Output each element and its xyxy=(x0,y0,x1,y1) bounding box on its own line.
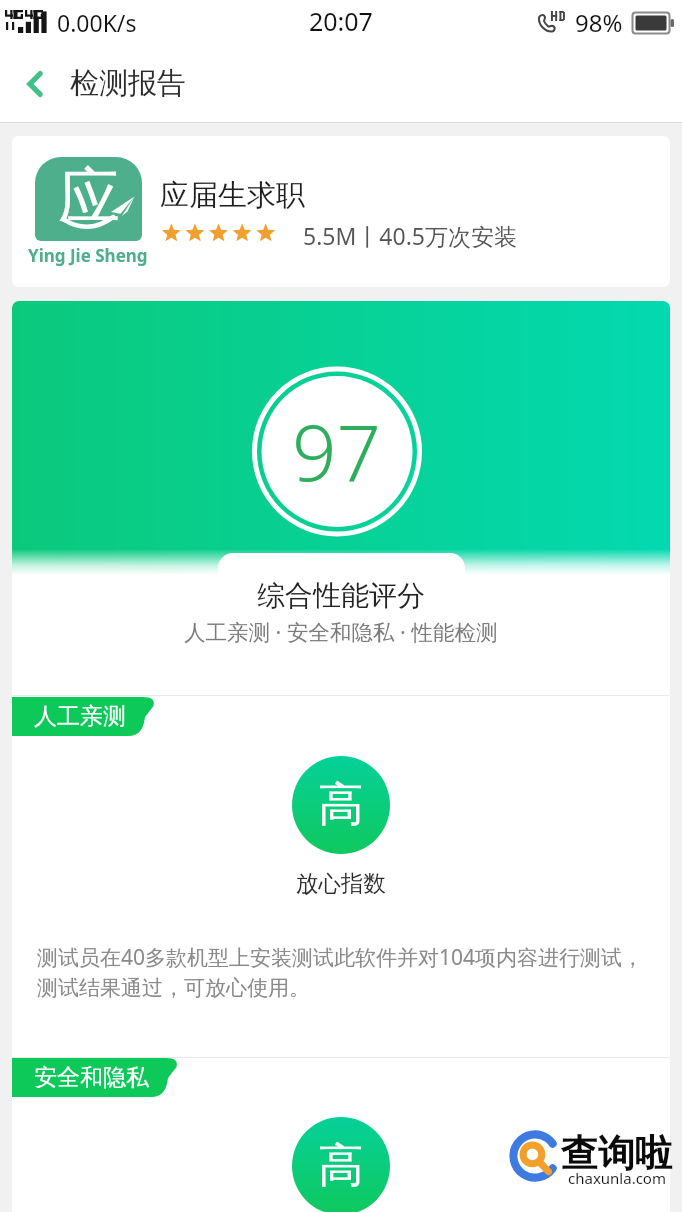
staticText: 查询啦 xyxy=(561,1130,672,1177)
button[interactable]: Back xyxy=(0,45,70,122)
button[interactable]: 应 xyxy=(12,136,670,287)
staticText: 98% xyxy=(575,6,623,39)
staticText: 应 xyxy=(58,158,120,236)
staticText: 97 xyxy=(292,398,382,504)
staticText: 综合性能评分 xyxy=(257,578,425,613)
staticText: 高 xyxy=(318,1137,364,1195)
staticText: 0.00K/s xyxy=(57,7,137,38)
staticText: 高 xyxy=(318,776,364,834)
staticText: chaxunla.com xyxy=(568,1168,666,1188)
button[interactable]: 安全和隐私 xyxy=(12,1058,178,1097)
staticText: 人工亲测 · 安全和隐私 · 性能检测 xyxy=(184,617,498,646)
staticText: 放心指数 xyxy=(296,869,386,897)
staticText: 检测报告 xyxy=(70,65,186,102)
staticText: 测试员在40多款机型上安装测试此软件并对104项内容进行测试， 测试结果通过，可… xyxy=(37,943,644,1002)
staticText: 安全和隐私 xyxy=(34,1063,149,1092)
button[interactable]: 人工亲测 xyxy=(12,697,155,736)
staticText: 人工亲测 xyxy=(34,702,126,731)
staticText: 5.5M丨40.5万次安装 xyxy=(303,220,517,251)
staticText: Ying Jie Sheng xyxy=(28,244,148,267)
staticText: 应届生求职 xyxy=(160,177,305,214)
staticText: 20:07 xyxy=(309,4,373,38)
